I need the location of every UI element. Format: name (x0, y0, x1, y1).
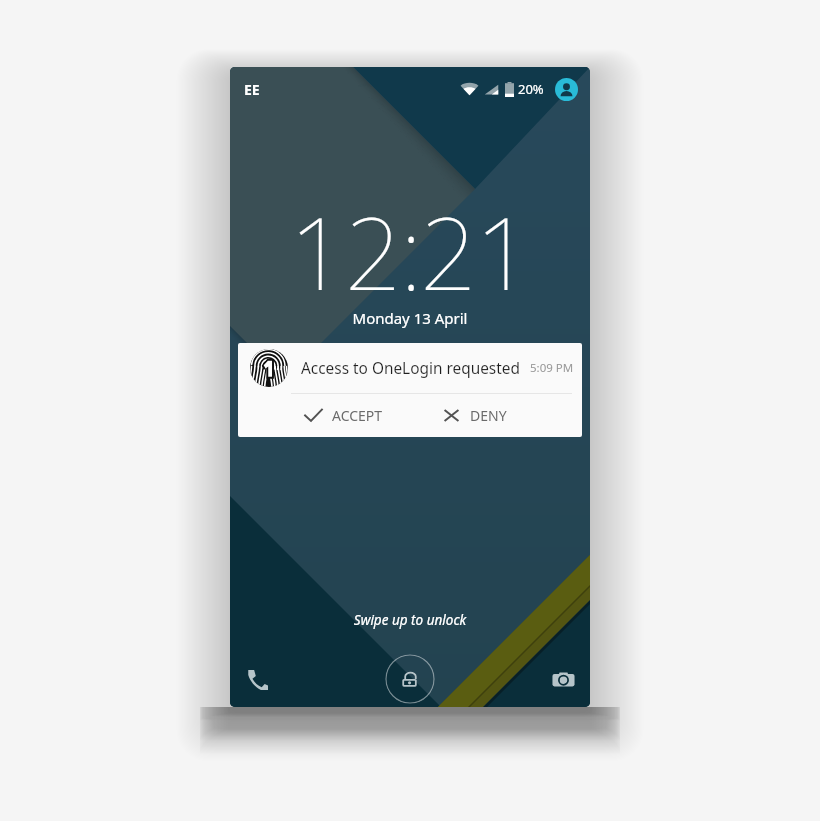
button[interactable]: ACCEPT (299, 399, 387, 432)
staticText: Swipe up to unlock (230, 611, 590, 629)
staticText: 12:21 (230, 183, 590, 319)
button[interactable]: Unlock (385, 654, 435, 704)
staticText: ACCEPT (332, 406, 383, 425)
staticText: 5:09 PM (530, 360, 573, 376)
staticText: Access to OneLogin requested (301, 358, 520, 379)
staticText: DENY (470, 406, 507, 425)
button[interactable]: Access to OneLogin requested (238, 343, 582, 437)
button[interactable]: DENY (437, 399, 511, 432)
button[interactable]: User profile (555, 78, 578, 101)
staticText: EE (244, 80, 260, 99)
staticText: 20% (518, 80, 544, 98)
button[interactable]: Phone (235, 657, 279, 701)
button[interactable]: Camera (541, 657, 585, 701)
staticText: Monday 13 April (230, 308, 590, 328)
